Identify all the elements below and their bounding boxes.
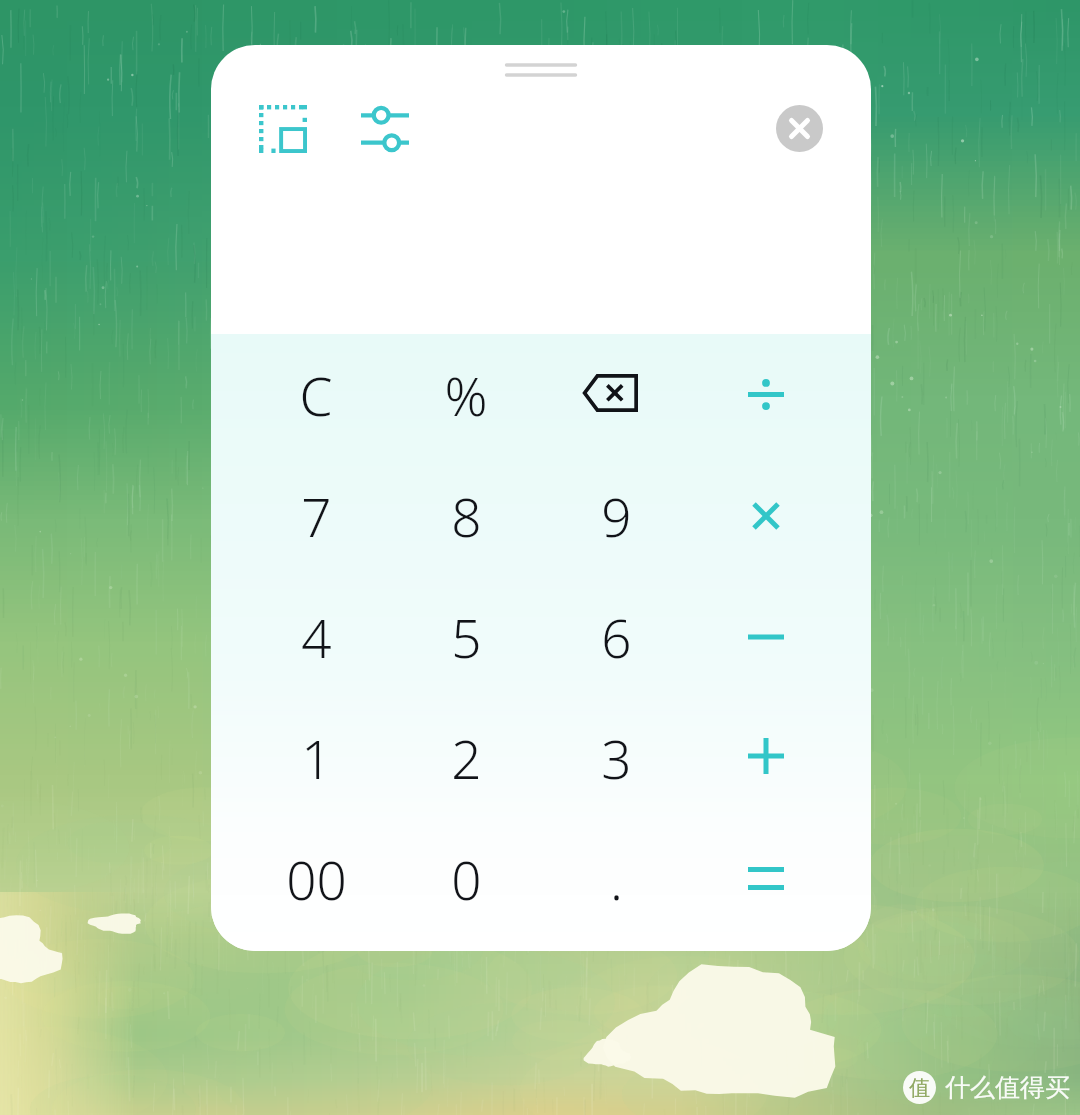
- button[interactable]: Backspace: [541, 334, 691, 455]
- button[interactable]: Minus: [691, 576, 841, 697]
- button[interactable]: .: [541, 818, 691, 939]
- staticText: 6: [601, 601, 632, 673]
- button[interactable]: 6: [541, 576, 691, 697]
- button[interactable]: Resize window: [251, 97, 315, 161]
- staticText: 3: [601, 722, 632, 794]
- staticText: 8: [451, 480, 482, 552]
- staticText: C: [299, 359, 333, 431]
- button[interactable]: Divide: [691, 334, 841, 455]
- staticText: .: [610, 843, 623, 915]
- button[interactable]: 7: [241, 455, 391, 576]
- button[interactable]: 3: [541, 697, 691, 818]
- button[interactable]: Equals: [691, 818, 841, 939]
- staticText: 4: [301, 601, 332, 673]
- staticText: 2: [451, 722, 482, 794]
- button[interactable]: Close: [776, 105, 823, 152]
- button[interactable]: Plus: [691, 697, 841, 818]
- button[interactable]: 2: [391, 697, 541, 818]
- button[interactable]: 0: [391, 818, 541, 939]
- button[interactable]: 9: [541, 455, 691, 576]
- staticText: 1: [301, 722, 332, 794]
- button[interactable]: Settings: [353, 97, 417, 161]
- staticText: 什么值得买: [945, 1072, 1070, 1103]
- button[interactable]: 4: [241, 576, 391, 697]
- button[interactable]: C: [241, 334, 391, 455]
- button[interactable]: 5: [391, 576, 541, 697]
- staticText: 9: [601, 480, 632, 552]
- staticText: 7: [301, 480, 332, 552]
- button[interactable]: %: [391, 334, 541, 455]
- staticText: 00: [286, 843, 347, 915]
- button[interactable]: 8: [391, 455, 541, 576]
- staticText: %: [444, 359, 488, 431]
- staticText: 0: [451, 843, 482, 915]
- button[interactable]: 00: [241, 818, 391, 939]
- button[interactable]: 1: [241, 697, 391, 818]
- button[interactable]: Multiply: [691, 455, 841, 576]
- staticText: 5: [451, 601, 482, 673]
- staticText: 值: [909, 1075, 930, 1101]
